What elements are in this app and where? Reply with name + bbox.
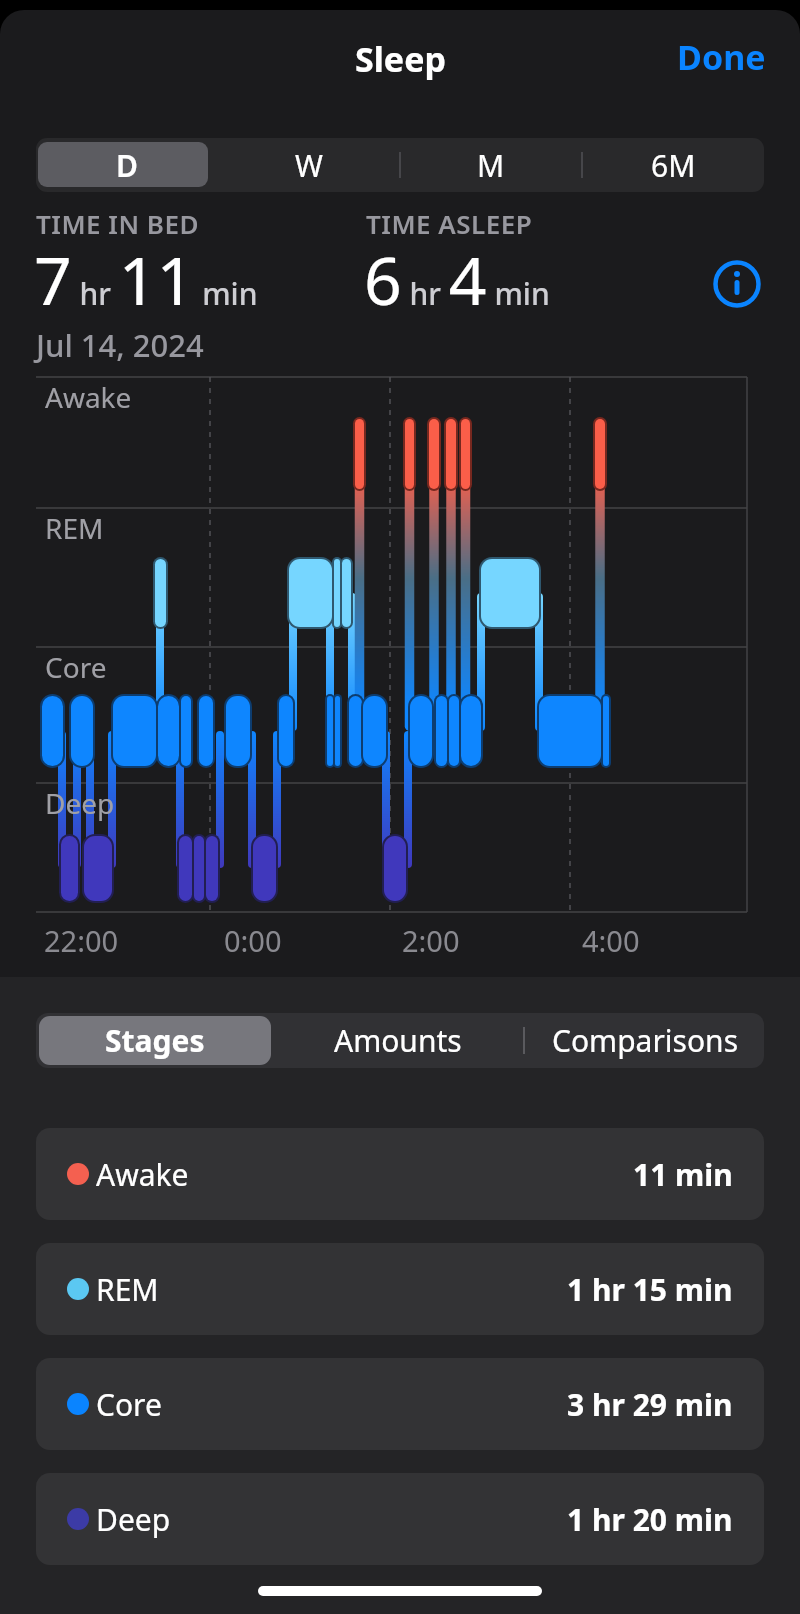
button[interactable]: Comparisons — [525, 1013, 764, 1068]
button[interactable]: Amounts — [273, 1013, 523, 1068]
staticText: Awake — [45, 378, 132, 416]
button[interactable] — [708, 260, 766, 318]
staticText: 11 min — [633, 1154, 733, 1195]
button[interactable]: REM — [36, 1243, 764, 1335]
button[interactable]: Deep — [36, 1473, 764, 1565]
button[interactable]: Stages — [39, 1016, 271, 1065]
staticText: 6 hr 4 min — [364, 234, 550, 324]
button[interactable]: M — [400, 138, 582, 192]
button[interactable]: D — [36, 138, 218, 192]
staticText: Sleep — [355, 36, 446, 82]
staticText: 22:00 — [44, 921, 119, 960]
staticText: Deep — [96, 1499, 171, 1540]
button[interactable]: Awake — [36, 1128, 764, 1220]
button[interactable] — [38, 142, 208, 187]
staticText: 3 hr 29 min — [567, 1384, 733, 1425]
staticText: TIME IN BED — [36, 206, 200, 241]
staticText: Stages — [105, 1020, 205, 1061]
staticText: Jul 14, 2024 — [36, 324, 204, 366]
staticText: Deep — [45, 784, 115, 822]
button[interactable]: W — [218, 138, 400, 192]
staticText: Amounts — [334, 1020, 462, 1061]
staticText: TIME ASLEEP — [366, 206, 533, 241]
staticText: D — [116, 145, 138, 186]
staticText: 7 hr 11 min — [34, 234, 258, 324]
button[interactable]: Core — [36, 1358, 764, 1450]
staticText: 6M — [651, 145, 696, 186]
staticText: Done — [677, 34, 766, 80]
staticText: 1 hr 20 min — [567, 1499, 733, 1540]
staticText: 4:00 — [582, 921, 640, 960]
staticText: Core — [45, 648, 107, 686]
staticText: 0:00 — [224, 921, 282, 960]
staticText: Comparisons — [552, 1020, 738, 1061]
staticText: REM — [96, 1269, 159, 1310]
staticText: 2:00 — [402, 921, 460, 960]
button[interactable]: Done — [677, 26, 766, 72]
staticText: Core — [96, 1384, 162, 1425]
staticText: M — [477, 145, 505, 186]
staticText: REM — [45, 509, 104, 547]
staticText: W — [295, 145, 323, 186]
staticText: Awake — [96, 1154, 189, 1195]
button[interactable]: 6M — [582, 138, 764, 192]
staticText: 1 hr 15 min — [567, 1269, 733, 1310]
